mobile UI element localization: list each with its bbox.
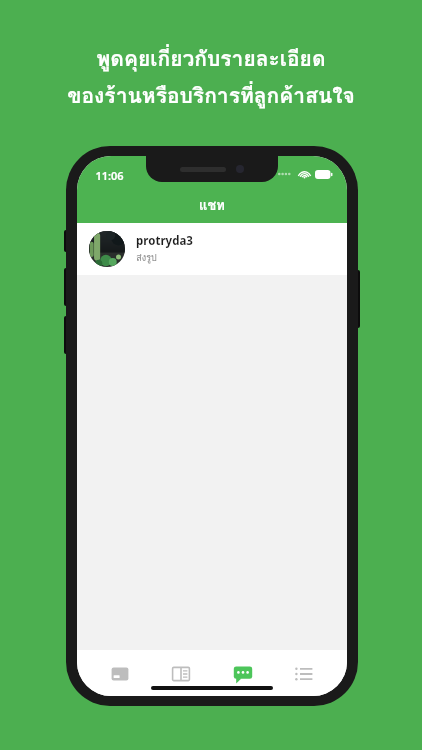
button[interactable]: Wallet	[102, 656, 138, 692]
staticText: ของร้านหรือบริการที่ลูกค้าสนใจ	[67, 79, 355, 112]
staticText: ส่งรูป	[136, 251, 157, 265]
staticText: protryda3	[136, 233, 193, 249]
staticText: 11:06	[95, 168, 124, 183]
button[interactable]: More	[286, 656, 322, 692]
button[interactable]: Chat	[225, 656, 261, 692]
button[interactable]: Feed	[163, 656, 199, 692]
staticText: พูดคุยเกี่ยวกับรายละเอียด	[96, 42, 326, 75]
button[interactable]: protryda3	[77, 223, 347, 275]
staticText: แชท	[199, 195, 225, 216]
